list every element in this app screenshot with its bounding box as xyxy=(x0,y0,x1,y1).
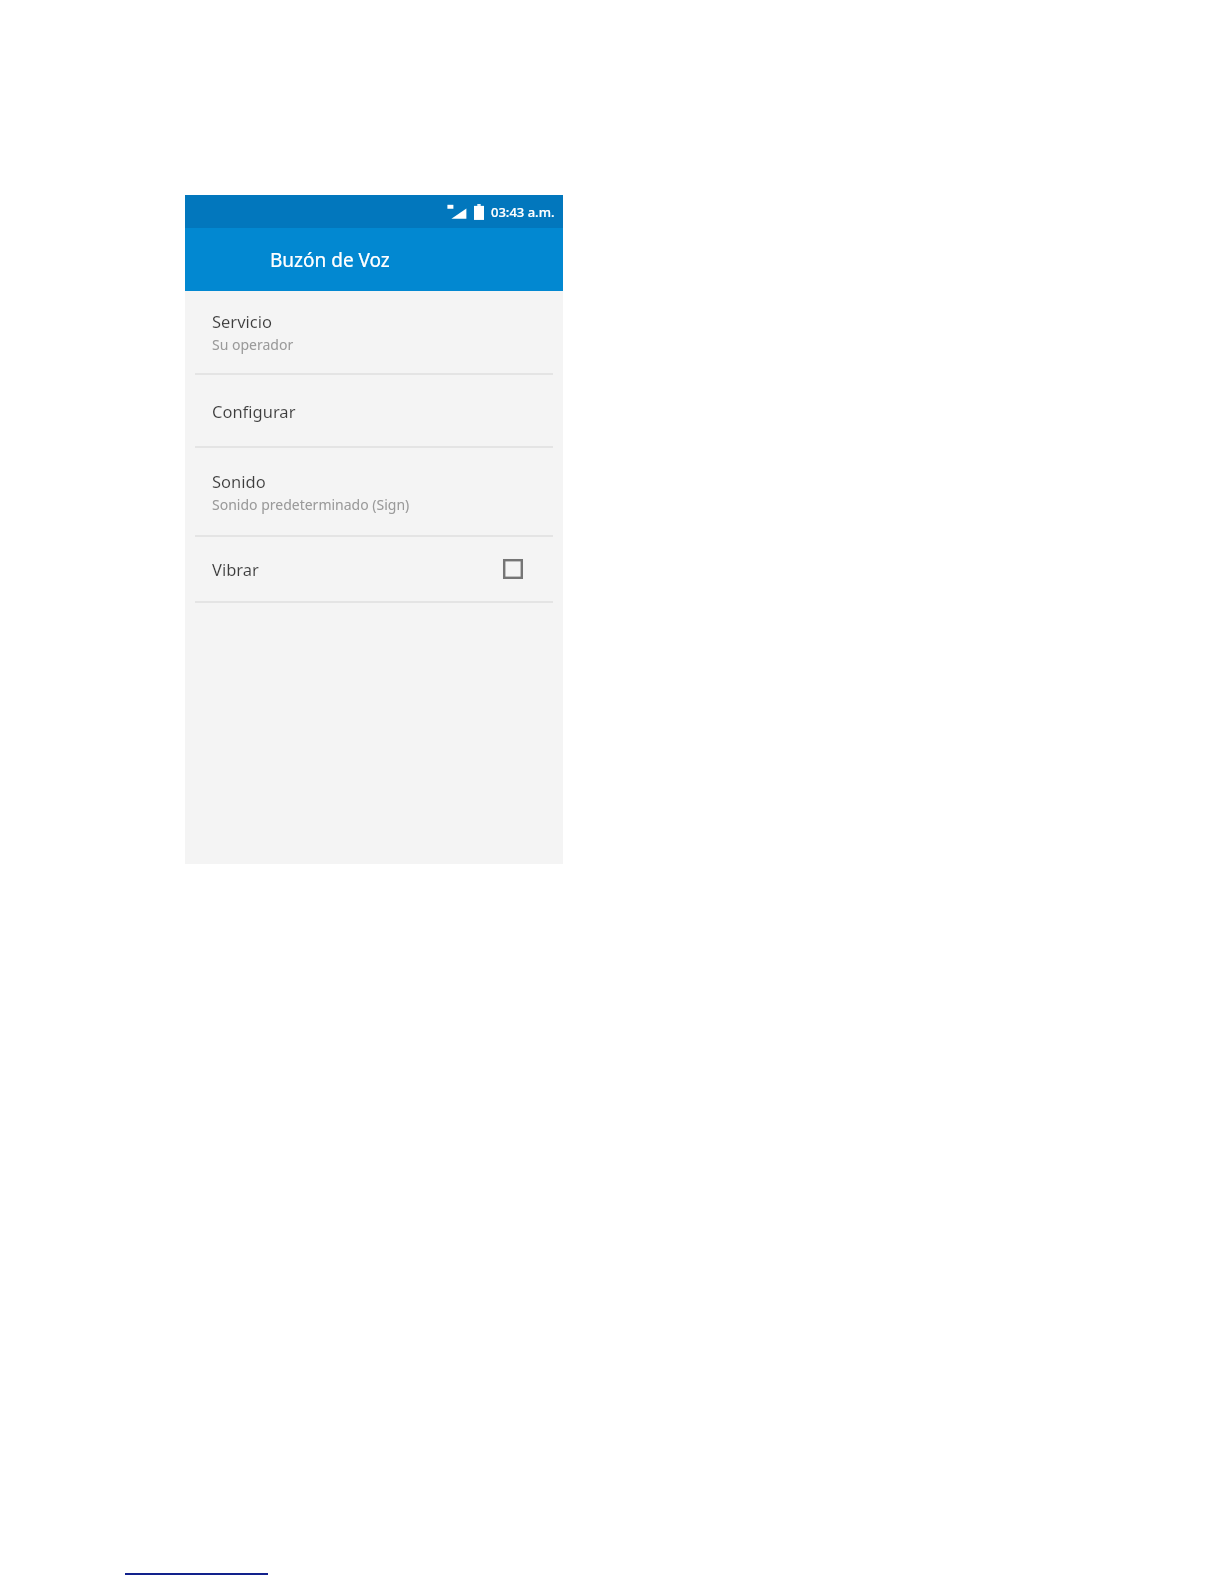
button[interactable]: Servicio xyxy=(185,291,563,373)
staticText: Configurar xyxy=(212,400,296,422)
staticText: Vibrar xyxy=(212,558,259,580)
staticText: Sonido xyxy=(212,470,266,492)
button[interactable]: Configurar xyxy=(185,375,563,446)
staticText: 03:43 a.m. xyxy=(491,203,555,221)
staticText: Buzón de Voz xyxy=(270,247,390,273)
staticText: Servicio xyxy=(212,310,272,332)
other: Vibrar xyxy=(502,558,524,580)
staticText: Sonido predeterminado (Sign) xyxy=(212,495,410,514)
button[interactable]: Vibrar xyxy=(185,537,563,601)
button[interactable]: Sonido xyxy=(185,448,563,535)
staticText: Su operador xyxy=(212,335,294,354)
